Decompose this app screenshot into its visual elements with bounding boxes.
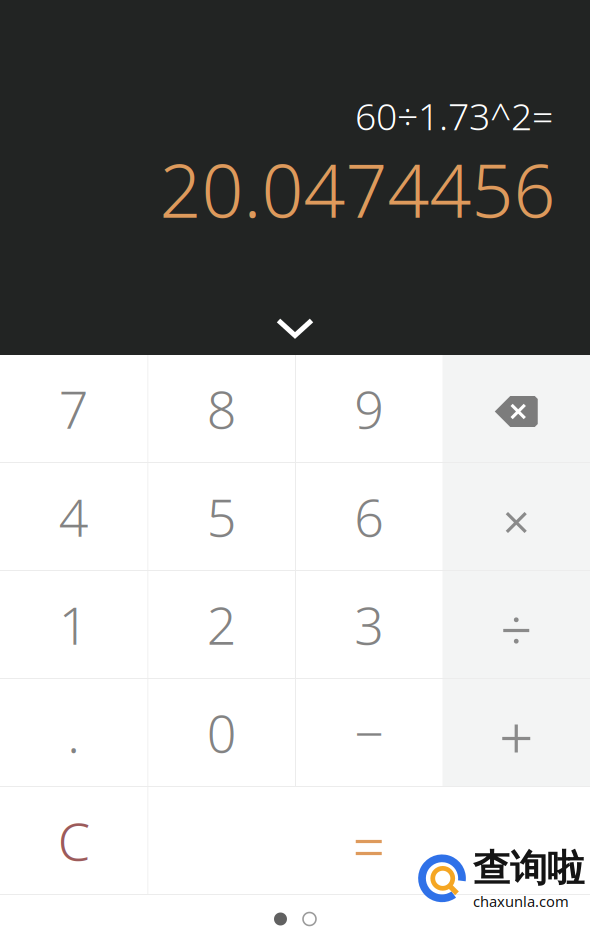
- button[interactable]: 7: [0, 355, 147, 462]
- button[interactable]: Collapse display: [250, 301, 340, 355]
- staticText: 7: [59, 374, 89, 443]
- button[interactable]: C: [0, 787, 147, 894]
- button[interactable]: 0: [148, 679, 295, 786]
- staticText: 0: [207, 698, 237, 767]
- button[interactable]: −: [296, 679, 442, 786]
- staticText: 4: [59, 482, 89, 551]
- button[interactable]: 5: [148, 463, 295, 570]
- staticText: 1: [59, 590, 89, 659]
- staticText: 9: [354, 374, 384, 443]
- staticText: 5: [207, 482, 237, 551]
- button[interactable]: Equals: [295, 787, 442, 894]
- button[interactable]: Delete: [442, 355, 590, 462]
- staticText: 2: [207, 590, 237, 659]
- staticText: −: [354, 698, 384, 767]
- staticText: 8: [207, 374, 237, 443]
- button[interactable]: Multiply: [442, 463, 590, 570]
- button[interactable]: Divide: [442, 571, 590, 678]
- button[interactable]: .: [0, 679, 147, 786]
- staticText: 6: [354, 482, 384, 551]
- button[interactable]: 6: [296, 463, 442, 570]
- staticText: C: [58, 806, 90, 875]
- staticText: 查询啦: [473, 846, 584, 892]
- button[interactable]: 2: [148, 571, 295, 678]
- button[interactable]: Plus: [442, 679, 590, 786]
- button[interactable]: 3: [296, 571, 442, 678]
- button[interactable]: 8: [148, 355, 295, 462]
- staticText: 20.0474456: [159, 141, 555, 238]
- button[interactable]: 4: [0, 463, 147, 570]
- staticText: chaxunla.com: [473, 891, 569, 911]
- staticText: 60÷1.73^2=: [355, 91, 553, 141]
- button[interactable]: 9: [296, 355, 442, 462]
- staticText: 3: [354, 590, 384, 659]
- staticText: .: [67, 698, 80, 767]
- button[interactable]: 1: [0, 571, 147, 678]
